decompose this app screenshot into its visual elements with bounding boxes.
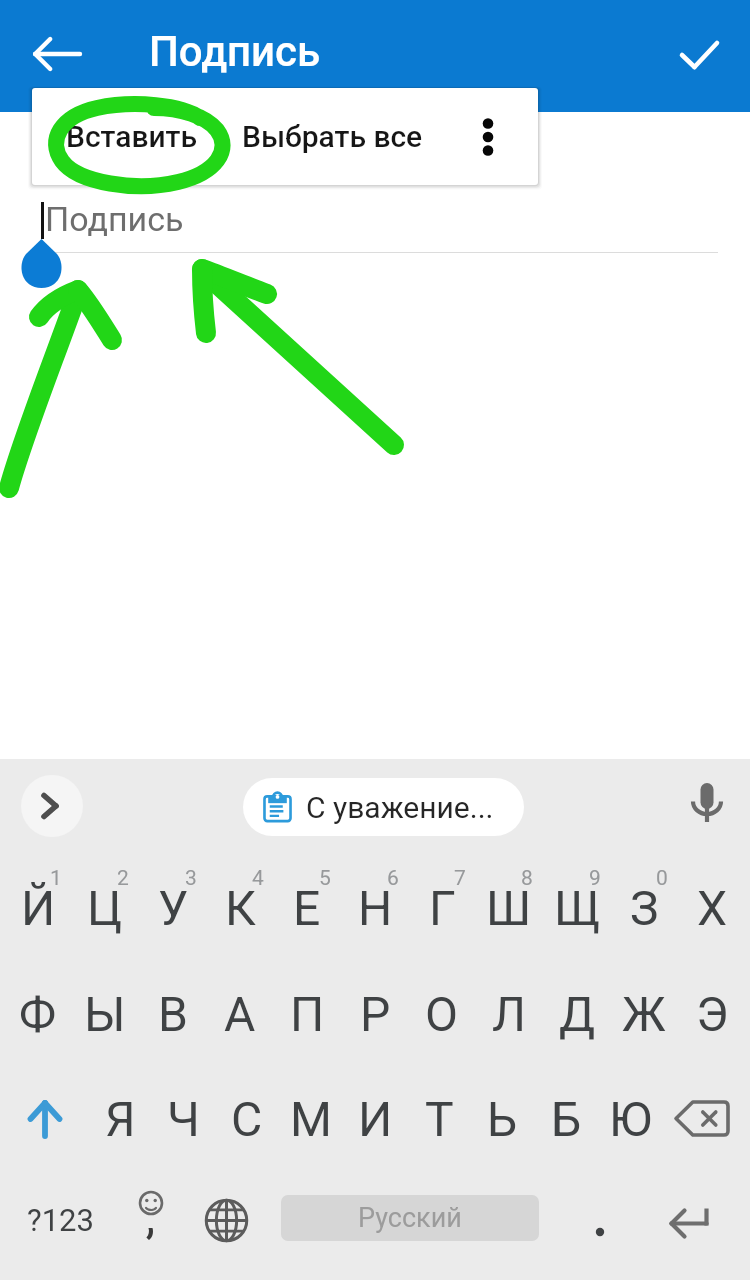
staticText: Э bbox=[696, 986, 729, 1042]
button[interactable]: У bbox=[139, 860, 207, 956]
staticText: Й bbox=[21, 880, 56, 936]
button[interactable]: Voice input bbox=[692, 783, 722, 823]
staticText: Т bbox=[425, 1091, 454, 1147]
staticText: Б bbox=[551, 1091, 582, 1147]
staticText: 5 bbox=[319, 866, 331, 890]
staticText: П bbox=[290, 986, 325, 1042]
button[interactable]: Д bbox=[543, 966, 611, 1062]
staticText: Ж bbox=[622, 986, 666, 1042]
staticText: Р bbox=[360, 986, 391, 1042]
button[interactable]: ?123 bbox=[0, 1176, 120, 1264]
button[interactable]: В bbox=[139, 966, 207, 1062]
button[interactable]: Enter bbox=[645, 1178, 733, 1266]
staticText: Русский bbox=[358, 1202, 462, 1234]
button[interactable]: Б bbox=[534, 1071, 598, 1167]
button[interactable]: Я bbox=[88, 1071, 152, 1167]
staticText: Подпись bbox=[149, 27, 321, 76]
staticText: Л bbox=[492, 986, 526, 1042]
staticText: Ю bbox=[609, 1091, 652, 1147]
button[interactable]: Н bbox=[341, 860, 409, 956]
button[interactable]: А bbox=[206, 966, 274, 1062]
staticText: Ь bbox=[487, 1091, 518, 1147]
staticText: 9 bbox=[589, 866, 601, 890]
button[interactable]: Ы bbox=[71, 966, 139, 1062]
staticText: Ф bbox=[19, 986, 57, 1042]
staticText: М bbox=[290, 1091, 332, 1147]
button[interactable]: О bbox=[408, 966, 476, 1062]
button[interactable]: И bbox=[343, 1071, 407, 1167]
button[interactable]: К bbox=[206, 860, 274, 956]
button[interactable]: Ь bbox=[470, 1071, 534, 1167]
button[interactable]: Ф bbox=[4, 966, 72, 1062]
staticText: Е bbox=[293, 880, 321, 936]
staticText: 4 bbox=[252, 866, 264, 890]
staticText: Д bbox=[559, 986, 596, 1042]
staticText: Ш bbox=[486, 880, 532, 936]
button[interactable]: Выбрать все bbox=[222, 88, 442, 185]
staticText: У bbox=[158, 880, 189, 936]
staticText: Н bbox=[358, 880, 393, 936]
button[interactable]: Й bbox=[4, 860, 72, 956]
button[interactable]: Е bbox=[273, 860, 341, 956]
button[interactable]: Ч bbox=[151, 1071, 215, 1167]
staticText: ?123 bbox=[27, 1202, 94, 1238]
staticText: Г bbox=[429, 880, 456, 936]
staticText: В bbox=[158, 986, 188, 1042]
staticText: О bbox=[425, 986, 459, 1042]
button[interactable]: Backspace bbox=[664, 1070, 740, 1166]
button[interactable]: Вставить bbox=[32, 88, 247, 185]
staticText: 3 bbox=[185, 866, 197, 890]
button[interactable]: Х bbox=[678, 860, 746, 956]
staticText: 1 bbox=[50, 866, 62, 890]
staticText: З bbox=[630, 880, 659, 936]
staticText: С уважение... bbox=[306, 790, 494, 825]
staticText: Ч bbox=[167, 1091, 200, 1147]
staticText: 7 bbox=[454, 866, 466, 890]
staticText: 6 bbox=[387, 866, 399, 890]
button[interactable]: Ш bbox=[475, 860, 543, 956]
staticText: 2 bbox=[117, 866, 129, 890]
button[interactable]: Р bbox=[341, 966, 409, 1062]
button[interactable]: Щ bbox=[543, 860, 611, 956]
button[interactable]: Г bbox=[408, 860, 476, 956]
button[interactable]: З bbox=[610, 860, 678, 956]
button[interactable] bbox=[562, 1188, 638, 1276]
button[interactable]: Ц bbox=[71, 860, 139, 956]
button[interactable]: М bbox=[279, 1071, 343, 1167]
button[interactable]: Change language bbox=[190, 1176, 262, 1264]
button[interactable]: More options bbox=[449, 88, 527, 185]
button[interactable]: П bbox=[273, 966, 341, 1062]
button[interactable]: Expand suggestions bbox=[21, 775, 83, 837]
staticText: Вставить bbox=[66, 119, 198, 154]
button[interactable]: Save bbox=[662, 18, 734, 90]
staticText: А bbox=[224, 986, 256, 1042]
staticText: Ц bbox=[87, 880, 123, 936]
staticText: Ы bbox=[84, 986, 126, 1042]
button[interactable]: С bbox=[215, 1071, 279, 1167]
staticText: С bbox=[231, 1091, 263, 1147]
staticText: Подпись bbox=[45, 199, 184, 239]
button[interactable]: Emoji bbox=[115, 1172, 187, 1260]
staticText: Х bbox=[697, 880, 728, 936]
staticText: Я bbox=[105, 1091, 136, 1147]
button[interactable]: Ж bbox=[610, 966, 678, 1062]
staticText: 8 bbox=[521, 866, 533, 890]
staticText: Выбрать все bbox=[242, 119, 423, 154]
button[interactable]: Shift bbox=[11, 1072, 79, 1168]
button[interactable]: Ю bbox=[598, 1071, 662, 1167]
button[interactable]: Русский bbox=[281, 1195, 539, 1241]
button[interactable]: С уважение... bbox=[243, 778, 524, 836]
staticText: И bbox=[358, 1091, 393, 1147]
button[interactable]: Back bbox=[20, 18, 92, 90]
staticText: 0 bbox=[656, 866, 668, 890]
staticText: Щ bbox=[554, 880, 601, 936]
staticText: К bbox=[225, 880, 256, 936]
button[interactable]: Л bbox=[475, 966, 543, 1062]
button[interactable]: Э bbox=[678, 966, 746, 1062]
button[interactable]: Т bbox=[407, 1071, 471, 1167]
